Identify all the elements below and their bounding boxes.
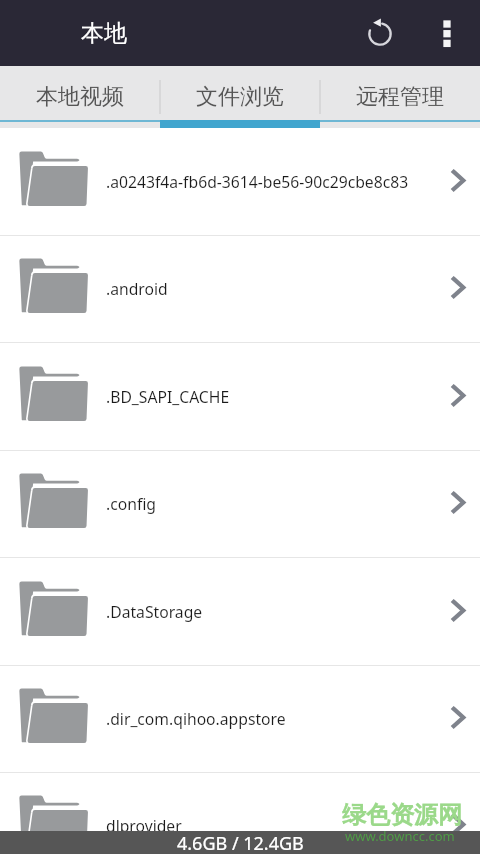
staticText: 本地视频 — [36, 83, 124, 111]
button[interactable]: 本地视频 — [0, 66, 160, 128]
button[interactable]: .BD_SAPI_CACHE — [0, 342, 480, 450]
button[interactable]: 文件浏览 — [160, 66, 320, 128]
button[interactable]: 远程管理 — [320, 66, 480, 128]
staticText: 4.6GB / 12.4GB — [177, 831, 304, 854]
staticText: .config — [106, 493, 432, 514]
button[interactable]: .dir_com.qihoo.appstore — [0, 665, 480, 772]
button[interactable]: .a0243f4a-fb6d-3614-be56-90c29cbe8c83 — [0, 128, 480, 235]
button[interactable]: .DataStorage — [0, 557, 480, 665]
button[interactable]: .config — [0, 450, 480, 557]
staticText: 绿色资源网 — [342, 800, 462, 830]
staticText: www.downcc.com — [345, 827, 455, 845]
button[interactable]: dlprovider — [0, 772, 480, 854]
staticText: .android — [106, 278, 432, 299]
staticText: .a0243f4a-fb6d-3614-be56-90c29cbe8c83 — [106, 171, 432, 192]
staticText: .dir_com.qihoo.appstore — [106, 708, 432, 729]
button[interactable]: .android — [0, 235, 480, 342]
staticText: 文件浏览 — [196, 83, 284, 111]
staticText: dlprovider — [106, 815, 432, 836]
staticText: 远程管理 — [356, 83, 444, 111]
staticText: 本地 — [81, 19, 127, 48]
button[interactable]: Refresh — [355, 9, 404, 58]
staticText: .DataStorage — [106, 601, 432, 622]
staticText: .BD_SAPI_CACHE — [106, 386, 432, 407]
button[interactable]: More options — [423, 9, 471, 57]
button[interactable]: 4.6GB / 12.4GB — [0, 831, 480, 854]
